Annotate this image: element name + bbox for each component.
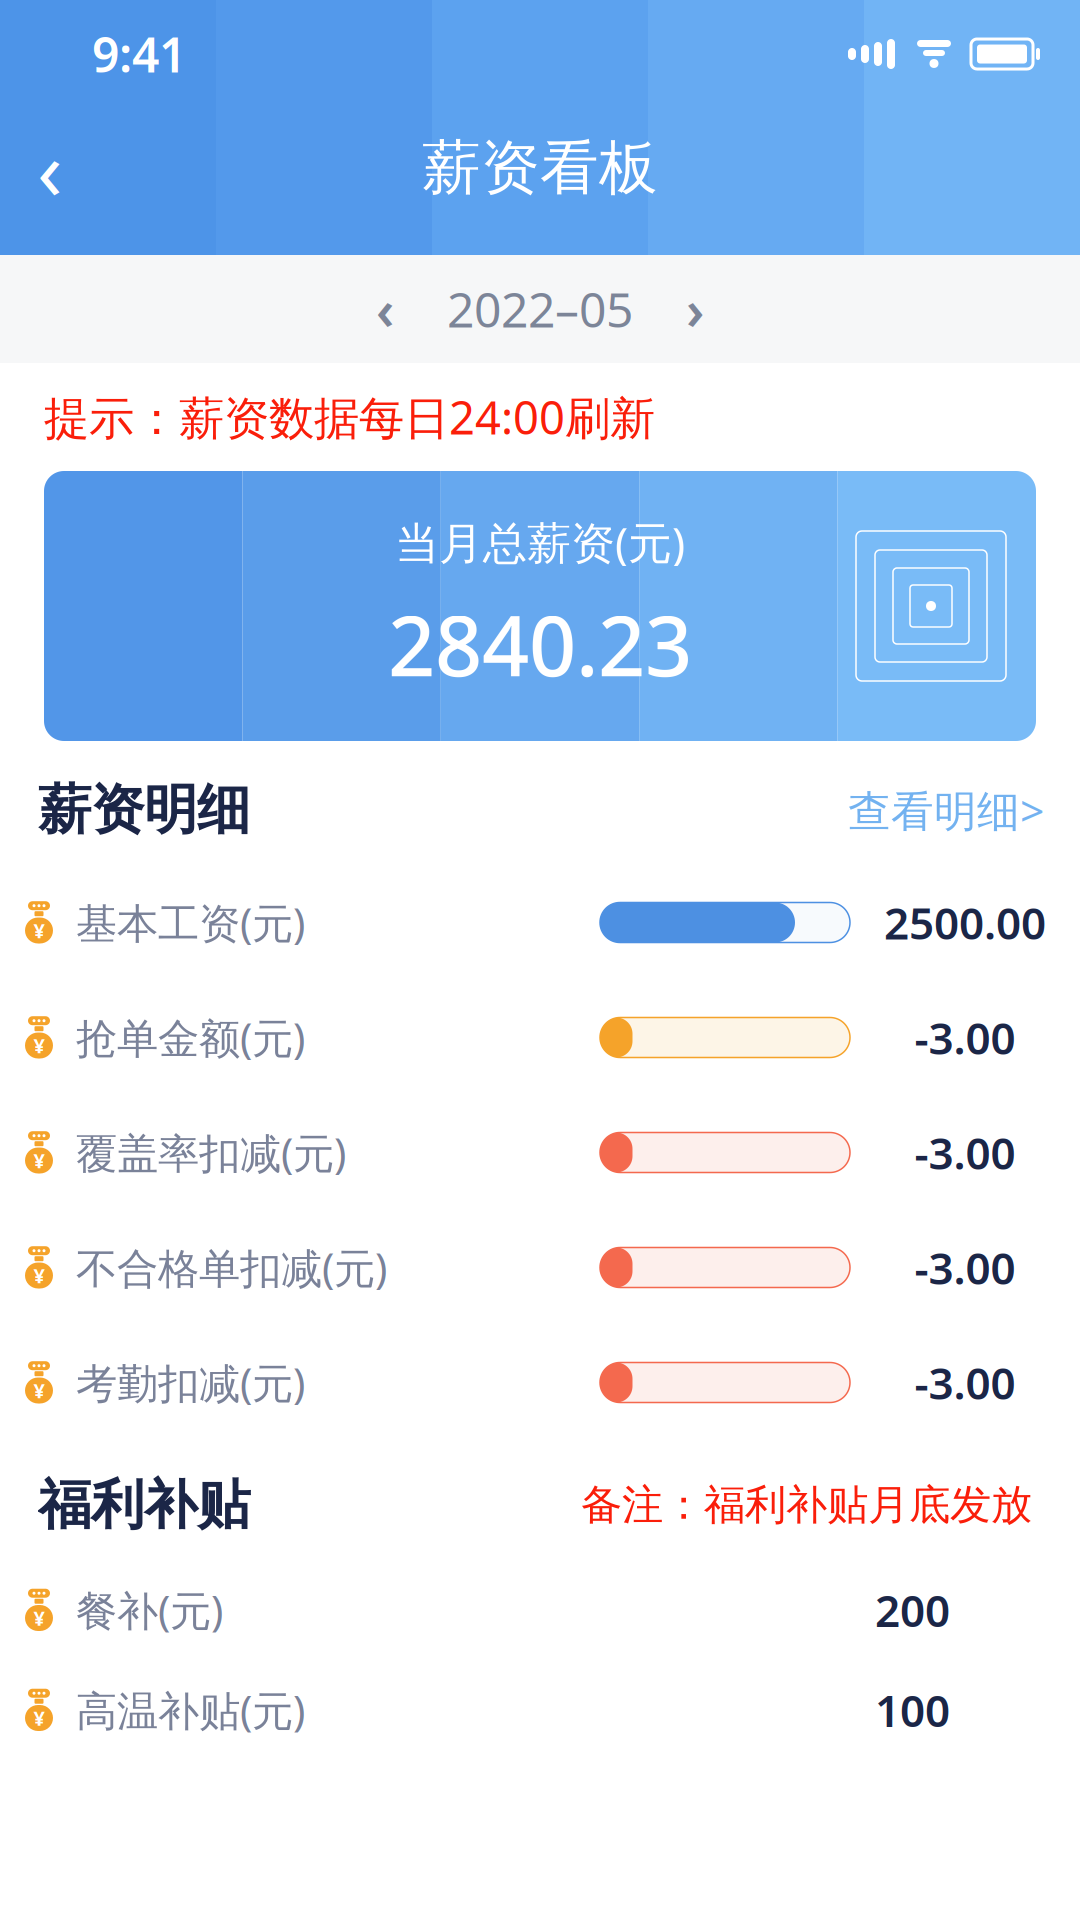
button[interactable]: ¥ (0, 1325, 1080, 1440)
staticText: 高温补贴(元) (76, 1683, 305, 1737)
staticText: 提示：薪资数据每日24:00刷新 (44, 387, 655, 447)
staticText: 薪资看板 (422, 132, 658, 204)
button[interactable]: ¥ (0, 865, 1080, 980)
staticText: 考勤扣减(元) (76, 1355, 305, 1410)
button[interactable]: ¥ (0, 1660, 1080, 1760)
staticText: 覆盖率扣减(元) (76, 1125, 346, 1180)
staticText: 餐补(元) (76, 1583, 223, 1637)
staticText: 备注：福利补贴月底发放 (581, 1480, 1032, 1530)
button[interactable]: 下一月 (655, 269, 735, 349)
staticText: 200 (875, 1581, 950, 1639)
staticText: 2500.00 (884, 893, 1046, 952)
button[interactable]: 上一月 (345, 269, 425, 349)
staticText: ¥ (33, 917, 44, 944)
staticText: ¥ (33, 1262, 44, 1289)
staticText: ¥ (33, 1605, 44, 1631)
button[interactable]: 查看明细> (848, 768, 1080, 852)
button[interactable]: 返回 (0, 118, 100, 218)
staticText: 9:41 (92, 22, 186, 86)
staticText: 不合格单扣减(元) (76, 1240, 387, 1295)
staticText: 2840.23 (388, 589, 692, 699)
staticText: ‹ (37, 113, 63, 223)
staticText: ‹ (376, 274, 394, 344)
staticText: 2022–05 (447, 277, 633, 341)
staticText: 100 (875, 1681, 950, 1739)
staticText: 当月总薪资(元) (395, 513, 685, 571)
staticText: 基本工资(元) (76, 895, 305, 950)
staticText: ¥ (33, 1705, 44, 1731)
staticText: -3.00 (914, 1353, 1015, 1412)
staticText: 查看明细> (848, 782, 1044, 838)
staticText: › (686, 274, 704, 344)
staticText: -3.00 (914, 1123, 1015, 1182)
staticText: ¥ (33, 1377, 44, 1404)
staticText: 抢单金额(元) (76, 1010, 305, 1065)
staticText: -3.00 (914, 1238, 1015, 1297)
button[interactable]: ¥ (0, 1095, 1080, 1210)
staticText: 福利补贴 (38, 1472, 250, 1538)
button[interactable]: ¥ (0, 980, 1080, 1095)
staticText: ¥ (33, 1147, 44, 1174)
button[interactable]: ¥ (0, 1560, 1080, 1660)
button[interactable]: ¥ (0, 1210, 1080, 1325)
staticText: ¥ (33, 1032, 44, 1059)
staticText: -3.00 (914, 1008, 1015, 1067)
staticText: 薪资明细 (38, 777, 250, 843)
